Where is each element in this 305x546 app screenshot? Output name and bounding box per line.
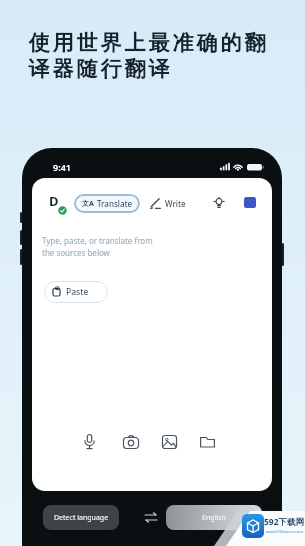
button[interactable]: Paste bbox=[44, 281, 108, 303]
button[interactable] bbox=[200, 436, 215, 448]
staticText: Paste bbox=[66, 286, 89, 298]
staticText: www.592xiazai.com bbox=[266, 529, 303, 534]
button[interactable]: English bbox=[166, 505, 262, 530]
staticText: 9:41 bbox=[53, 161, 71, 173]
staticText: 使用世界上最准确的翻 bbox=[27, 30, 267, 56]
staticText: 文A bbox=[82, 199, 94, 209]
staticText: English bbox=[202, 513, 226, 523]
staticText: 译器随行翻译 bbox=[27, 56, 171, 82]
staticText: 592下载网 bbox=[264, 516, 305, 528]
button[interactable] bbox=[123, 435, 139, 449]
button[interactable]: Write bbox=[149, 197, 186, 209]
button[interactable] bbox=[213, 197, 225, 209]
button[interactable] bbox=[244, 197, 256, 208]
button[interactable]: Detect language bbox=[43, 505, 119, 530]
staticText: Write bbox=[165, 198, 186, 209]
staticText: Translate bbox=[97, 198, 133, 209]
button[interactable] bbox=[162, 435, 177, 449]
staticText: Detect language bbox=[54, 513, 109, 523]
staticText: Type, paste, or translate from the sourc… bbox=[42, 235, 153, 259]
button[interactable]: 文A bbox=[74, 194, 140, 213]
staticText: D bbox=[49, 192, 59, 210]
button[interactable] bbox=[82, 434, 97, 451]
button[interactable] bbox=[144, 512, 158, 523]
